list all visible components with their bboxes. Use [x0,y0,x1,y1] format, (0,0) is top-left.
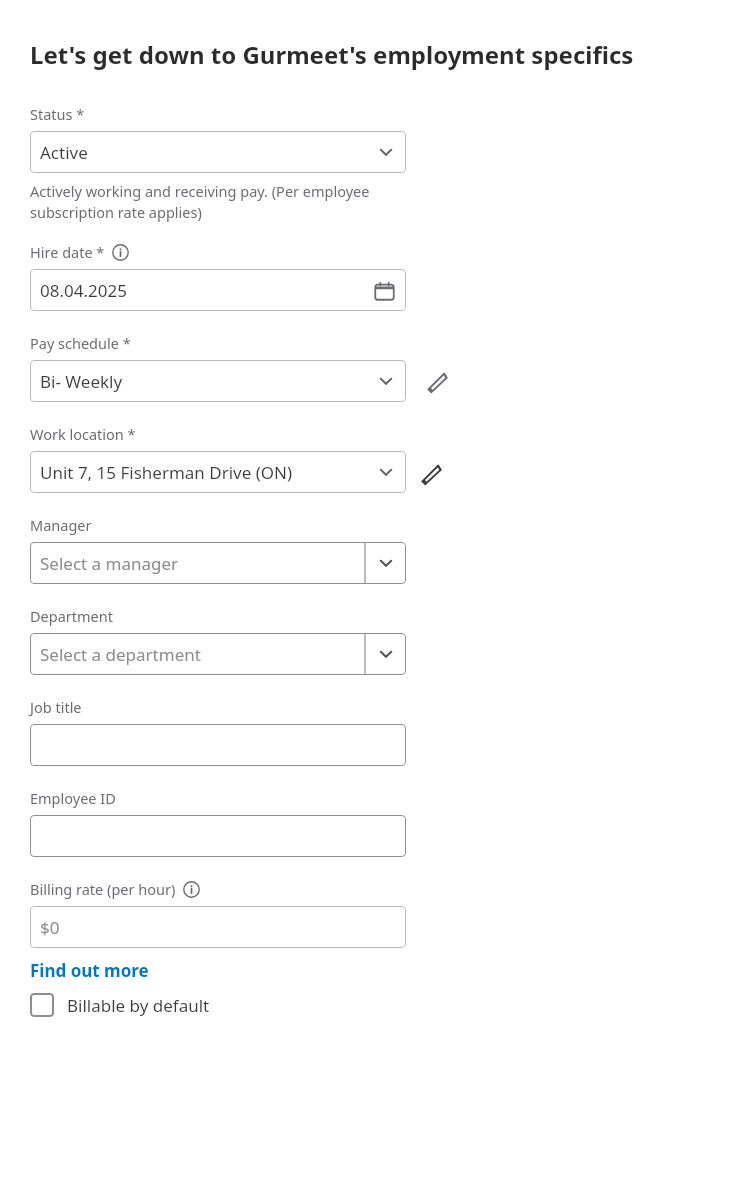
button[interactable]: Bi- Weekly [30,360,406,402]
button[interactable]: Billable by default [30,993,210,1017]
staticText: Hire date * [30,242,105,262]
button[interactable]: Find out more [30,959,149,982]
staticText: Actively working and receiving pay. (Per… [30,181,370,223]
staticText: Let's get down to Gurmeet's employment s… [30,38,634,71]
button[interactable]: Pick a date [374,280,395,301]
button[interactable]: Unit 7, 15 Fisherman Drive (ON) [30,451,406,493]
staticText: Work location * [30,424,136,444]
button[interactable]: Active [30,131,406,173]
staticText: Active [40,141,88,164]
staticText: 08.04.2025 [40,279,127,302]
button[interactable]: More information [183,881,200,898]
button[interactable] [30,815,406,857]
staticText: Job title [30,697,82,717]
button[interactable]: Edit [424,368,450,394]
staticText: Bi- Weekly [40,370,123,393]
staticText: Select a manager [40,552,179,575]
staticText: $0 [40,916,60,939]
staticText: Billable by default [67,994,210,1017]
staticText: Pay schedule * [30,333,131,353]
button[interactable]: Select a department [30,633,406,675]
button[interactable]: $0 [30,906,406,948]
button[interactable]: Edit [418,460,444,486]
button[interactable]: More information [112,244,129,261]
staticText: Select a department [40,643,201,666]
button[interactable]: Select a manager [30,542,406,584]
staticText: Find out more [30,959,149,982]
staticText: Department [30,606,113,626]
staticText: Status * [30,104,85,124]
button[interactable]: 08.04.2025 [30,269,406,311]
staticText: Manager [30,515,92,535]
staticText: Employee ID [30,788,116,808]
button[interactable] [30,724,406,766]
staticText: Unit 7, 15 Fisherman Drive (ON) [40,461,293,484]
staticText: Billing rate (per hour) [30,879,176,899]
